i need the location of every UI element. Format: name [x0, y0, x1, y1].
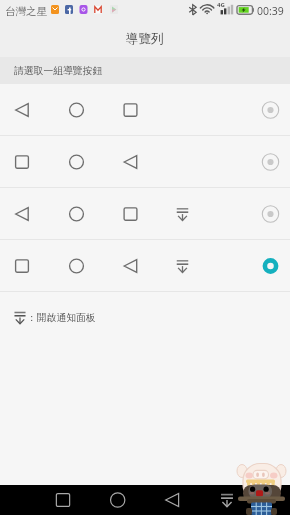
button[interactable] [0, 136, 290, 188]
staticText: 請選取一組導覽按鈕 [14, 65, 103, 77]
button[interactable]: Home [72, 485, 144, 515]
staticText: 導覽列 [126, 31, 164, 47]
button[interactable]: Recents [0, 485, 72, 515]
button[interactable]: Notifications [217, 485, 290, 515]
staticText: 台灣之星 [5, 5, 47, 18]
button[interactable] [0, 188, 290, 240]
staticText: ：開啟通知面板 [27, 312, 96, 324]
button[interactable]: Back [144, 485, 217, 515]
staticText: 00:39 [257, 4, 284, 18]
staticText: 4G [217, 1, 225, 9]
button[interactable] [0, 84, 290, 136]
button[interactable] [0, 240, 290, 292]
